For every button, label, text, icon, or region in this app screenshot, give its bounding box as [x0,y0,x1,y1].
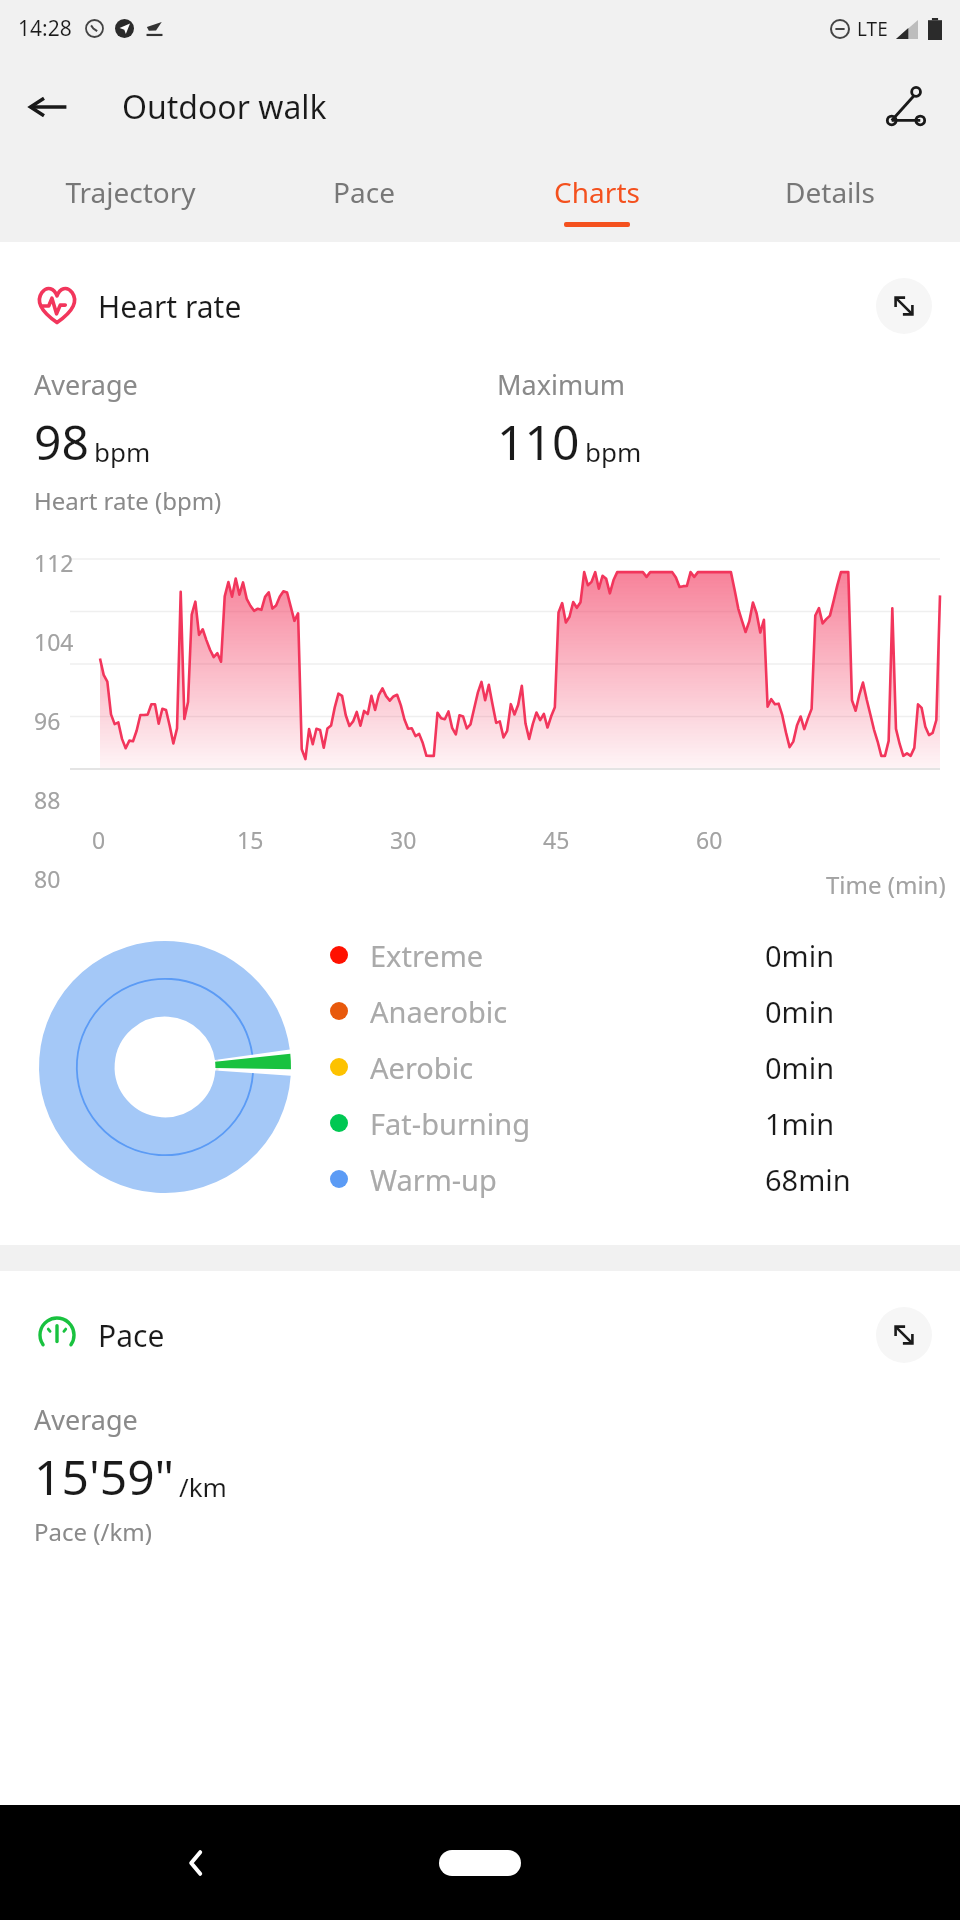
staticText: Maximum [497,366,626,403]
staticText: 60 [696,824,723,855]
staticText: Anaerobic [370,992,508,1031]
staticText: Charts [554,173,640,211]
staticText: 0min [765,936,835,975]
staticText: Heart rate (bpm) [34,484,222,517]
staticText: bpm [585,434,642,469]
button[interactable]: Extreme [330,927,930,983]
staticText: Average [34,366,138,403]
staticText: 104 [34,626,74,657]
staticText: 30 [390,824,417,855]
button[interactable]: Home [410,1831,550,1895]
staticText: 112 [34,547,74,578]
button[interactable]: Back [16,75,80,139]
staticText: 15 [237,824,264,855]
staticText: LTE [857,16,888,42]
staticText: /km [179,1469,227,1504]
staticText: 80 [34,863,61,894]
button[interactable]: Fat-burning [330,1095,930,1151]
staticText: 15'59" [34,1444,175,1509]
staticText: 98 [34,409,89,474]
button[interactable]: Warm-up [330,1151,930,1207]
staticText: 110 [497,409,580,474]
button[interactable]: Expand Pace [876,1307,932,1363]
staticText: Pace [98,1315,165,1356]
button[interactable]: Anaerobic [330,983,930,1039]
staticText: Fat-burning [370,1104,531,1143]
staticText: Pace [333,173,395,211]
staticText: 96 [34,705,61,736]
staticText: Trajectory [65,173,196,211]
staticText: 1min [765,1104,835,1143]
staticText: 14:28 [18,14,72,43]
staticText: Time (min) [826,868,946,901]
staticText: Aerobic [370,1048,474,1087]
button[interactable]: Expand Heart rate [876,278,932,334]
button[interactable]: Back [160,1827,232,1899]
button[interactable]: Details [713,157,946,242]
staticText: Details [785,173,875,211]
staticText: Extreme [370,936,484,975]
staticText: Pace (/km) [34,1515,152,1548]
staticText: 68min [765,1160,851,1199]
staticText: Average [34,1401,138,1438]
staticText: 45 [543,824,570,855]
staticText: 0 [92,824,106,855]
staticText: 0min [765,1048,835,1087]
staticText: 88 [34,784,61,815]
staticText: Warm-up [370,1160,497,1199]
button[interactable]: Pace [247,157,480,242]
button[interactable]: Aerobic [330,1039,930,1095]
staticText: Heart rate [98,286,242,327]
staticText: 0min [765,992,835,1031]
staticText: bpm [94,434,151,469]
button[interactable]: Trajectory [14,157,247,242]
button[interactable]: Share [874,75,938,139]
staticText: Outdoor walk [122,85,327,129]
button[interactable]: Charts [480,157,713,242]
